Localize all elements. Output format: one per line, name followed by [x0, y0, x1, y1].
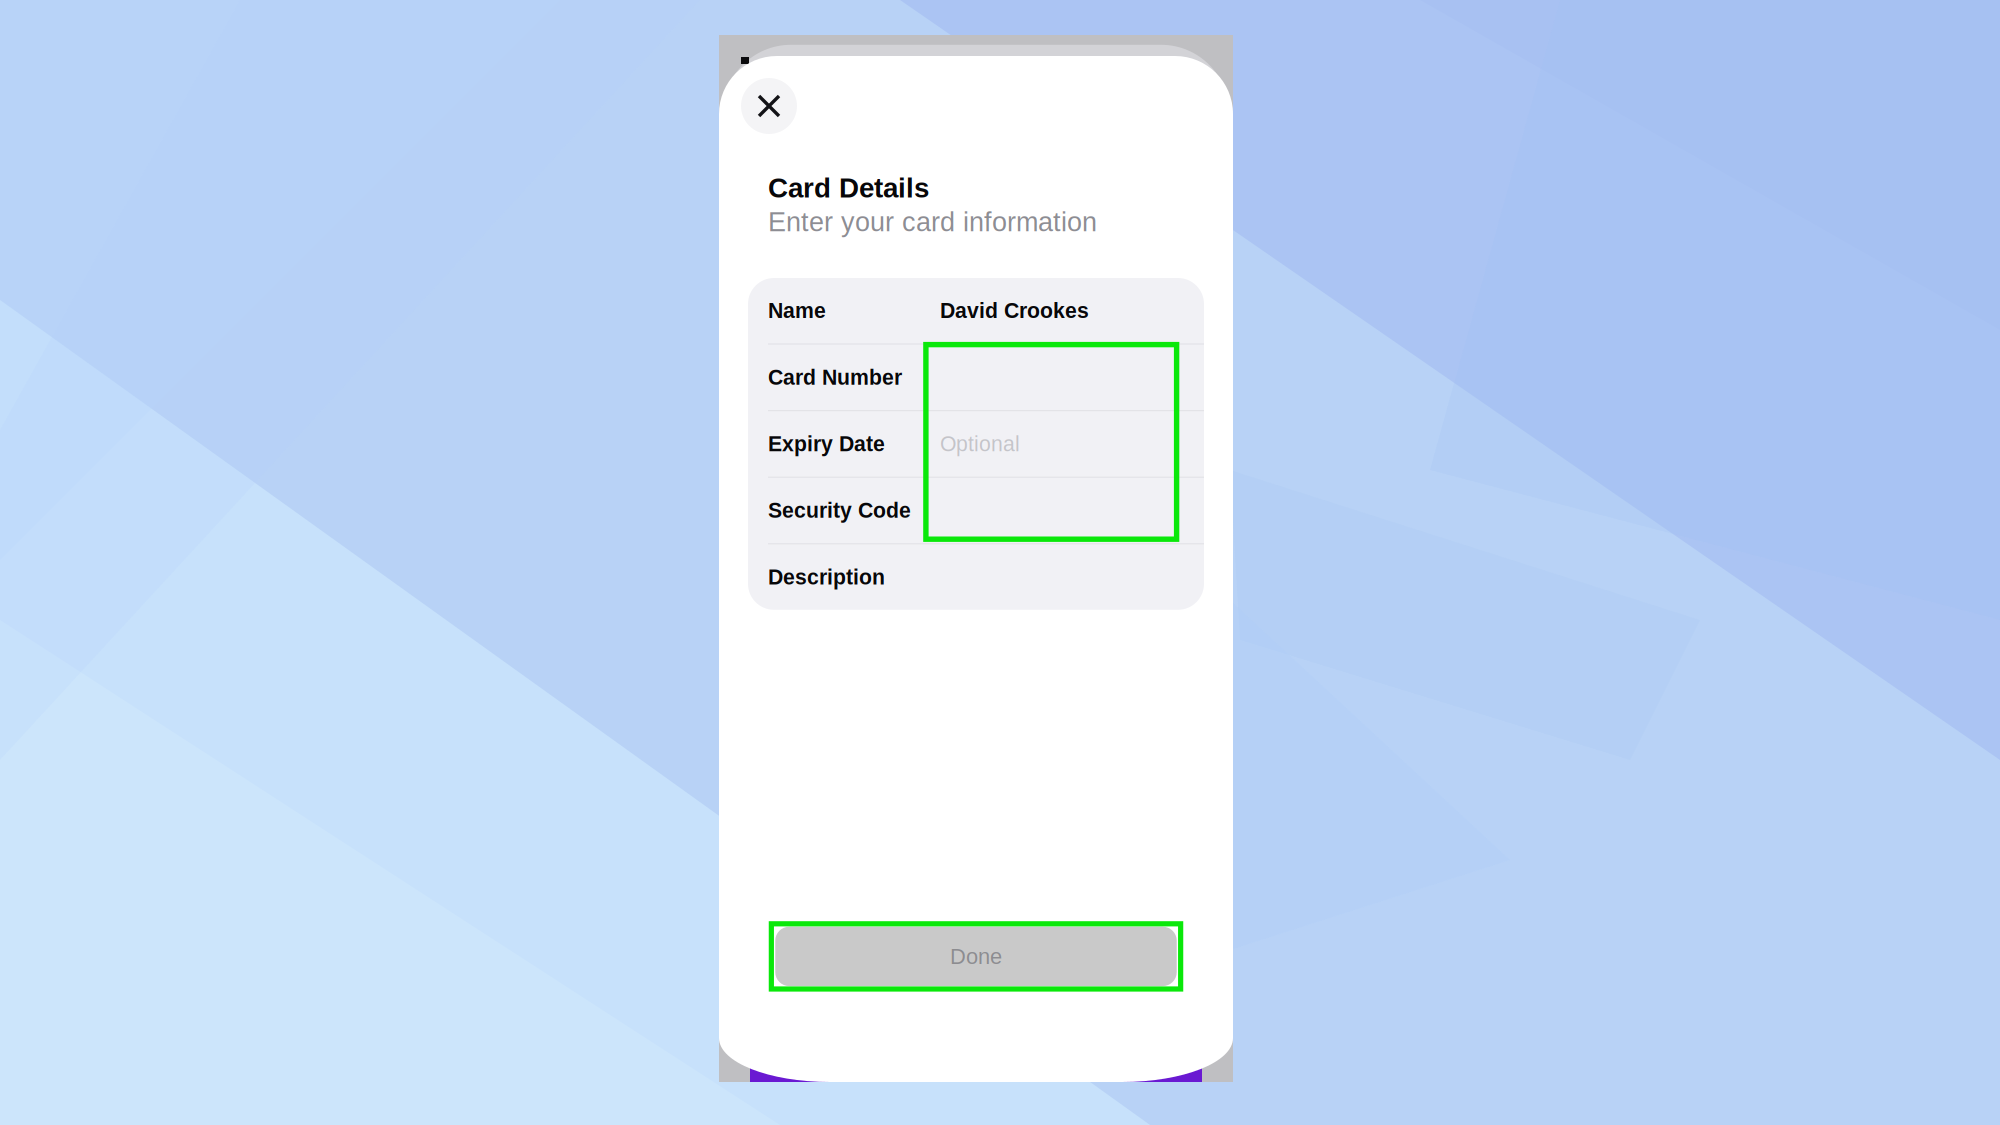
- staticText: Optional: [940, 432, 1020, 456]
- staticText: Done: [950, 944, 1002, 969]
- staticText: Expiry Date: [768, 432, 885, 456]
- button[interactable]: Done: [771, 924, 1181, 989]
- staticText: Card Details: [768, 172, 929, 203]
- staticText: Security Code: [768, 499, 911, 522]
- staticText: Card Number: [768, 365, 902, 389]
- staticText: Name: [768, 299, 826, 323]
- button[interactable]: Name: [748, 278, 1204, 343]
- button[interactable]: Close: [741, 78, 797, 134]
- staticText: David Crookes: [940, 299, 1089, 323]
- staticText: Description: [768, 565, 885, 589]
- button[interactable]: Description: [748, 544, 1204, 610]
- button[interactable]: Security Code: [748, 478, 1204, 543]
- button[interactable]: Card Number: [748, 345, 1204, 410]
- staticText: Enter your card information: [768, 207, 1097, 237]
- button[interactable]: Expiry Date: [748, 411, 1204, 477]
